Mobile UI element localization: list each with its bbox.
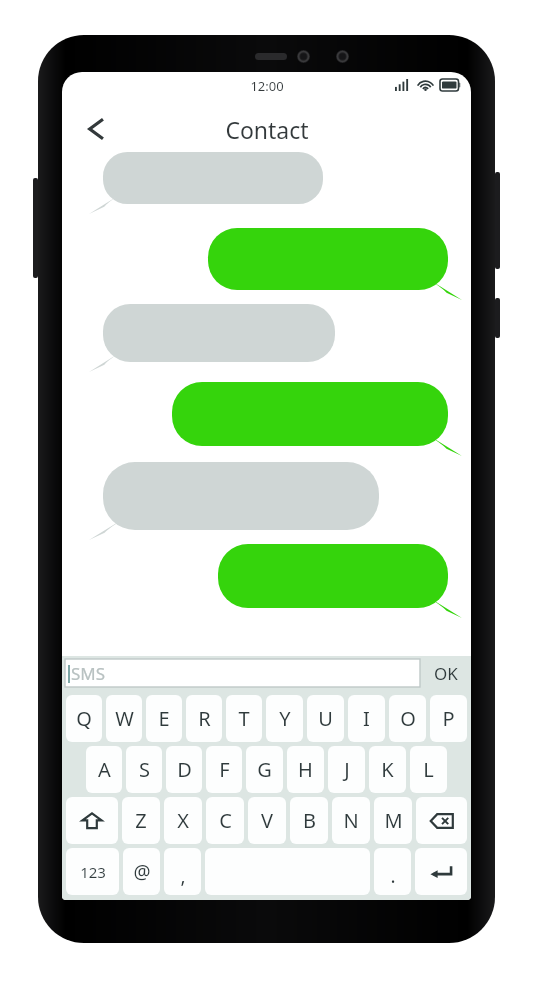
button[interactable]: W — [106, 695, 142, 742]
button[interactable] — [208, 228, 462, 302]
button[interactable]: SMS — [65, 659, 420, 687]
staticText: N — [343, 807, 359, 834]
staticText: Y — [279, 705, 291, 732]
button[interactable] — [89, 152, 323, 216]
button[interactable] — [218, 544, 462, 620]
button[interactable]: Z — [122, 797, 160, 844]
button[interactable]: U — [307, 695, 344, 742]
staticText: H — [298, 756, 313, 783]
staticText: X — [177, 807, 189, 834]
button[interactable]: Backspace — [416, 797, 467, 844]
staticText: 12:00 — [250, 77, 284, 95]
staticText: Q — [76, 705, 92, 732]
staticText: 123 — [80, 862, 106, 882]
button[interactable]: M — [374, 797, 412, 844]
button[interactable]: H — [287, 746, 324, 793]
button[interactable]: I — [348, 695, 385, 742]
staticText: F — [219, 756, 230, 783]
button[interactable]: P — [430, 695, 467, 742]
button[interactable]: Q — [66, 695, 102, 742]
button[interactable] — [89, 462, 379, 542]
button[interactable]: V — [248, 797, 286, 844]
button[interactable]: Shift — [66, 797, 118, 844]
button[interactable]: D — [166, 746, 202, 793]
staticText: , — [180, 863, 186, 889]
staticText: @ — [133, 859, 151, 885]
button[interactable]: J — [328, 746, 365, 793]
button[interactable]: G — [246, 746, 283, 793]
staticText: SMS — [71, 662, 106, 685]
button[interactable]: N — [332, 797, 370, 844]
button[interactable]: F — [206, 746, 242, 793]
staticText: Z — [135, 807, 147, 834]
staticText: J — [344, 756, 350, 783]
button[interactable]: B — [290, 797, 328, 844]
staticText: D — [177, 756, 192, 783]
button[interactable]: @ — [123, 848, 160, 895]
button[interactable]: OK — [423, 659, 468, 687]
staticText: R — [198, 705, 211, 732]
staticText: V — [261, 807, 273, 834]
staticText: OK — [434, 662, 458, 685]
staticText: B — [303, 807, 316, 834]
staticText: I — [363, 705, 370, 732]
button[interactable]: Enter — [415, 848, 467, 895]
staticText: E — [158, 705, 170, 732]
button[interactable]: Back — [74, 107, 118, 151]
button[interactable]: , — [164, 848, 201, 895]
staticText: M — [384, 807, 403, 834]
button[interactable]: C — [206, 797, 244, 844]
button[interactable]: 123 — [66, 848, 119, 895]
button[interactable] — [172, 382, 462, 458]
button[interactable]: E — [146, 695, 182, 742]
staticText: W — [115, 705, 134, 732]
staticText: Contact — [225, 114, 309, 145]
staticText: A — [98, 756, 111, 783]
button[interactable]: T — [226, 695, 262, 742]
button[interactable]: X — [164, 797, 202, 844]
staticText: L — [423, 756, 434, 783]
button[interactable]: O — [389, 695, 426, 742]
button[interactable]: S — [126, 746, 162, 793]
button[interactable]: K — [369, 746, 406, 793]
button[interactable]: R — [186, 695, 222, 742]
button[interactable] — [89, 304, 335, 374]
staticText: U — [318, 705, 333, 732]
button[interactable]: A — [86, 746, 122, 793]
staticText: O — [400, 705, 416, 732]
staticText: G — [257, 756, 272, 783]
staticText: . — [390, 863, 396, 889]
staticText: T — [238, 705, 250, 732]
staticText: S — [139, 756, 150, 783]
button[interactable]: L — [410, 746, 447, 793]
button[interactable]: . — [374, 848, 411, 895]
staticText: K — [381, 756, 394, 783]
button[interactable]: Y — [266, 695, 303, 742]
staticText: C — [219, 807, 232, 834]
staticText: P — [442, 705, 455, 732]
